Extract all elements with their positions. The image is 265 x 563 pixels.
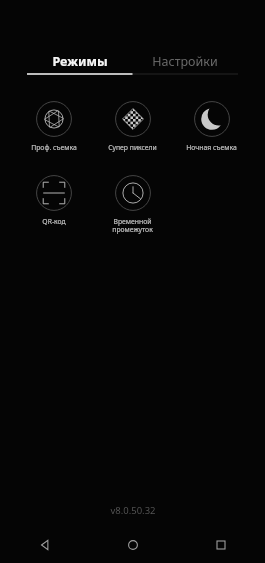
button[interactable]: Временной промежуток [93, 173, 172, 236]
staticText: Режимы [52, 53, 108, 70]
staticText: Временной промежуток [93, 217, 172, 234]
staticText: Супер пиксели [108, 143, 157, 152]
button[interactable]: Home [89, 527, 177, 563]
button[interactable]: Режимы [27, 44, 132, 78]
staticText: Ночная съемка [186, 143, 237, 152]
button[interactable]: QR-код [14, 173, 93, 228]
button[interactable]: Проф. съемка [14, 99, 93, 154]
staticText: v8.0.50.32 [110, 504, 156, 517]
button[interactable]: Back [0, 527, 89, 563]
staticText: Проф. съемка [31, 143, 77, 152]
staticText: QR-код [42, 217, 66, 226]
button[interactable]: Ночная съемка [172, 99, 251, 154]
button[interactable]: Супер пиксели [93, 99, 172, 154]
button[interactable]: Recents [177, 527, 265, 563]
staticText: Настройки [152, 53, 218, 70]
button[interactable]: Настройки [132, 44, 238, 78]
